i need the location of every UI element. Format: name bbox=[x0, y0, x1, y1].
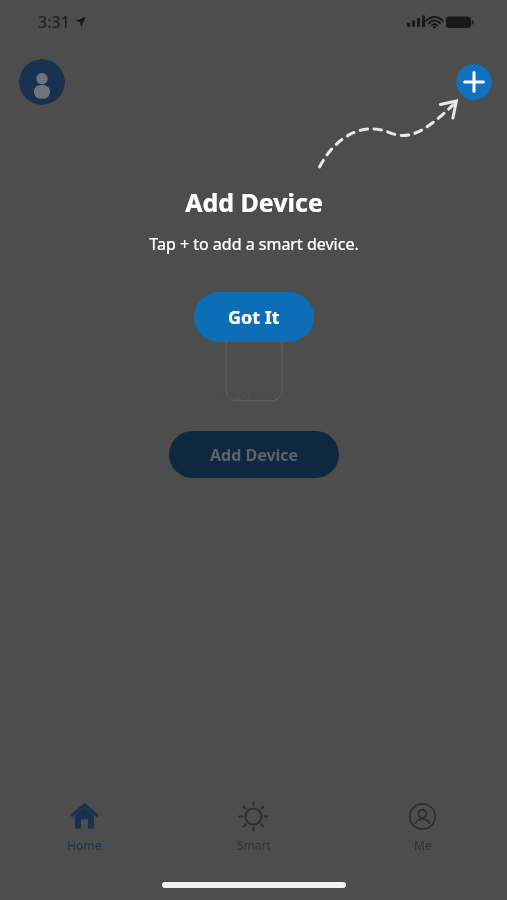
button[interactable]: Profile bbox=[19, 59, 65, 105]
staticText: Me bbox=[414, 837, 432, 853]
staticText: Add Device bbox=[185, 185, 323, 219]
button[interactable]: Me bbox=[338, 798, 507, 858]
staticText: No devices bbox=[215, 384, 292, 404]
button[interactable]: Home bbox=[0, 798, 169, 858]
button[interactable]: Got It bbox=[194, 292, 314, 342]
staticText: Home bbox=[67, 837, 102, 853]
staticText: 3:31 bbox=[38, 11, 70, 33]
button[interactable]: Add Device bbox=[169, 431, 339, 478]
staticText: Add Device bbox=[210, 444, 299, 466]
staticText: Tap + to add a smart device. bbox=[149, 233, 359, 255]
staticText: Smart bbox=[237, 837, 271, 853]
button[interactable]: Add device bbox=[456, 64, 492, 100]
staticText: Got It bbox=[228, 305, 280, 330]
button[interactable]: Smart bbox=[169, 798, 338, 858]
